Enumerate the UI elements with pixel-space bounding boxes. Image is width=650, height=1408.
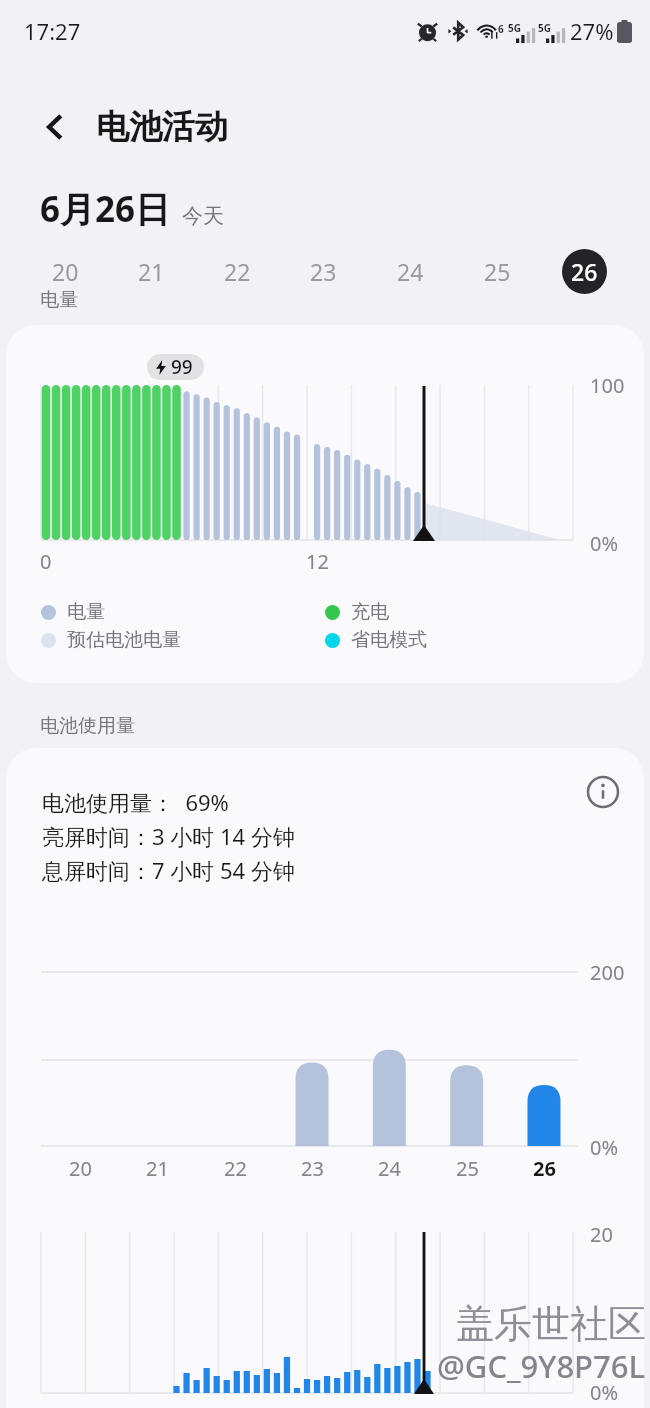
staticText: 0 (40, 548, 52, 575)
staticText: 亮屏时间：3 小时 14 分钟 (42, 821, 295, 851)
staticText: 0% (590, 1134, 619, 1161)
staticText: 25 (456, 1155, 479, 1182)
staticText: 26 (533, 1155, 556, 1182)
staticText: 预估电池电量 (67, 628, 181, 652)
staticText: 27% (570, 16, 614, 46)
staticText: 24 (378, 1155, 401, 1182)
staticText: 25 (484, 256, 511, 287)
staticText: 99 (171, 354, 193, 380)
staticText: 17:27 (24, 16, 81, 46)
staticText: 5G (508, 21, 521, 35)
staticText: 23 (301, 1155, 324, 1182)
button[interactable]: Info (580, 769, 626, 815)
staticText: 200 (590, 959, 625, 986)
staticText: 22 (224, 1155, 247, 1182)
staticText: 20 (590, 1221, 613, 1248)
staticText: @GC_9Y8P76L (437, 1345, 646, 1387)
staticText: 盖乐世社区 (456, 1300, 646, 1348)
staticText: 电池活动 (96, 106, 228, 148)
staticText: 电池使用量 (40, 714, 135, 738)
button[interactable]: 22 (194, 243, 280, 299)
staticText: 电量 (40, 288, 78, 312)
staticText: 省电模式 (351, 628, 427, 652)
staticText: 26 (571, 256, 598, 287)
staticText: 0% (590, 1379, 619, 1406)
staticText: 21 (138, 256, 165, 287)
staticText: 6 (498, 22, 504, 36)
button[interactable]: 21 (108, 243, 194, 299)
button[interactable]: 25 (454, 243, 541, 299)
staticText: 20 (52, 256, 79, 287)
staticText: 5G (538, 21, 551, 35)
staticText: 充电 (351, 600, 389, 624)
staticText: 电量 (67, 600, 105, 624)
staticText: 今天 (182, 203, 224, 229)
button[interactable]: 26 (541, 243, 628, 299)
staticText: 12 (306, 548, 329, 575)
staticText: 22 (224, 256, 251, 287)
staticText: 21 (146, 1155, 169, 1182)
staticText: 23 (310, 256, 337, 287)
staticText: 电池使用量： 69% (42, 787, 229, 817)
staticText: 24 (397, 256, 424, 287)
button[interactable]: Back (30, 101, 82, 153)
staticText: 20 (69, 1155, 92, 1182)
button[interactable]: 23 (280, 243, 367, 299)
button[interactable]: 20 (22, 243, 108, 299)
button[interactable]: 24 (367, 243, 454, 299)
staticText: 息屏时间：7 小时 54 分钟 (42, 855, 295, 885)
staticText: 0% (590, 530, 619, 557)
staticText: 100 (590, 372, 625, 399)
staticText: 6月26日 (40, 185, 171, 233)
